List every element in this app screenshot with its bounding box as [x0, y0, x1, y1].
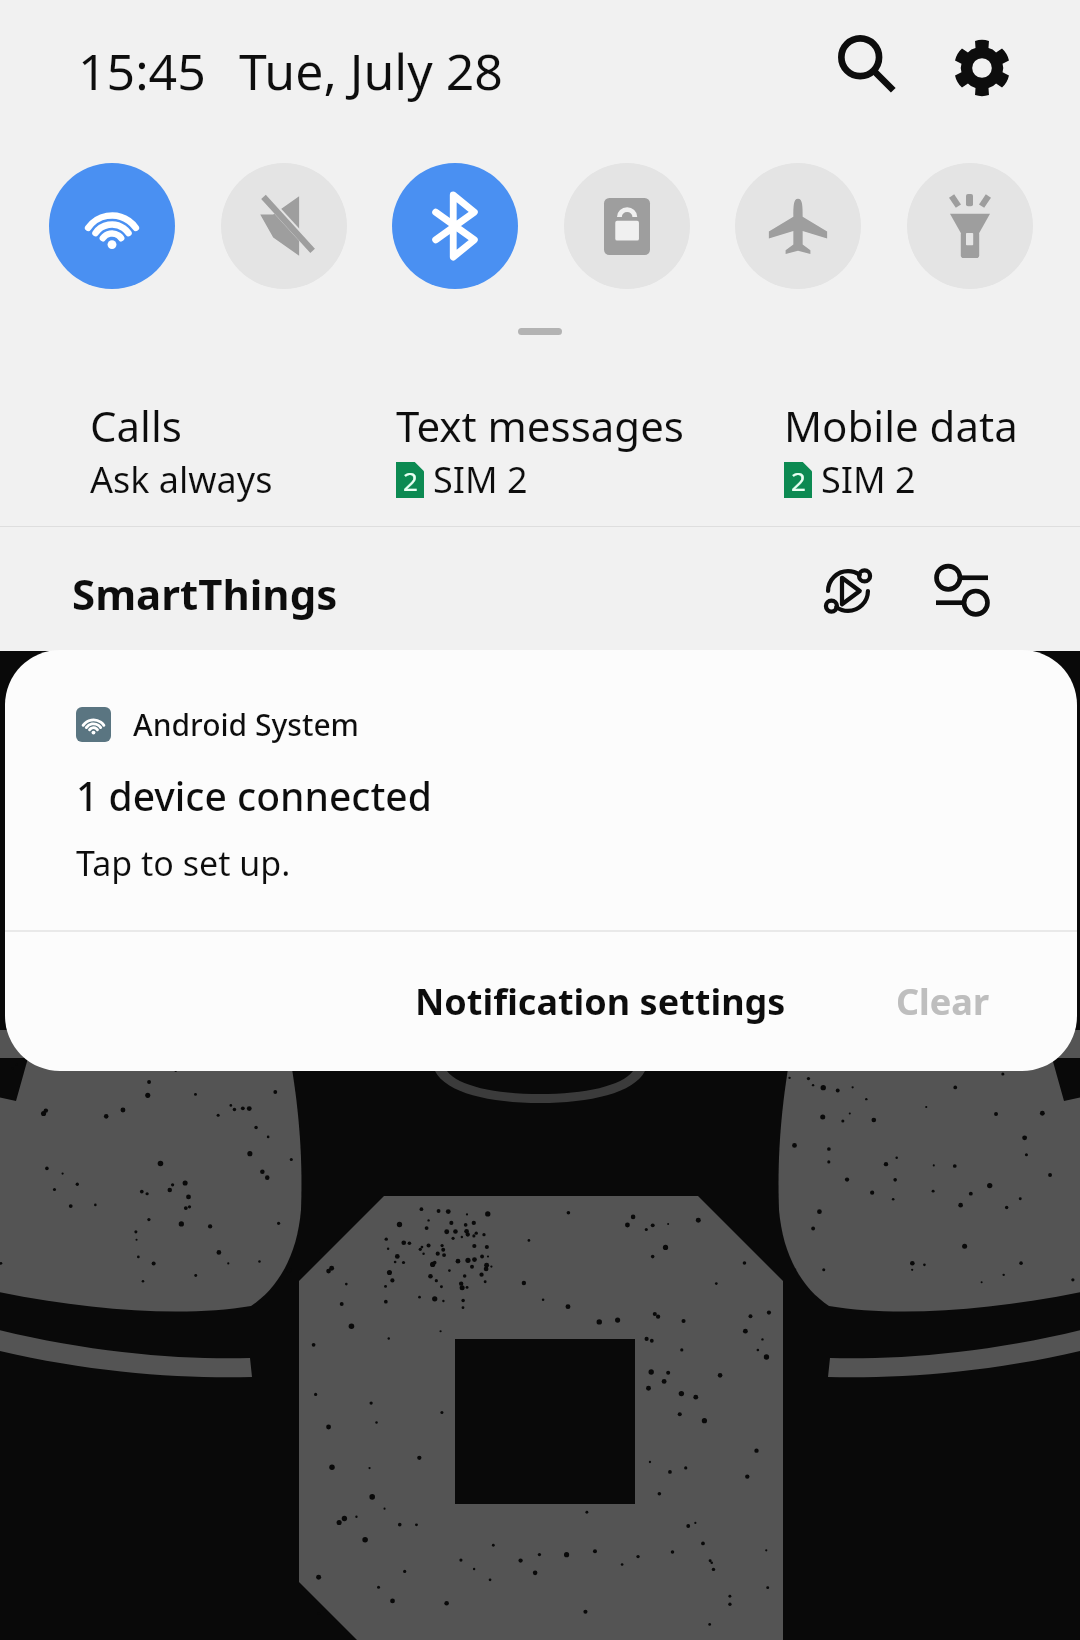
- button[interactable]: Settings: [938, 24, 1026, 112]
- staticText: Tue, July 28: [239, 37, 503, 105]
- button[interactable]: Android System: [5, 650, 1077, 930]
- button[interactable]: Bluetooth: [392, 163, 518, 289]
- button[interactable]: Wi-Fi: [49, 163, 175, 289]
- staticText: Notification settings: [415, 977, 786, 1026]
- staticText: 2: [791, 463, 806, 498]
- staticText: SIM 2: [433, 455, 528, 504]
- button[interactable]: Flashlight: [907, 163, 1033, 289]
- staticText: SIM 2: [821, 455, 916, 504]
- button[interactable]: Mute: [221, 163, 347, 289]
- staticText: SmartThings: [72, 565, 338, 622]
- staticText: Android System: [133, 704, 360, 745]
- button[interactable]: Media output: [805, 548, 891, 634]
- button[interactable]: Lock: [564, 163, 690, 289]
- staticText: Calls: [90, 397, 182, 454]
- staticText: Text messages: [396, 397, 684, 454]
- staticText: Mobile data: [784, 397, 1018, 454]
- button[interactable]: Airplane mode: [735, 163, 861, 289]
- staticText: 15:45: [78, 37, 206, 105]
- staticText: 2: [403, 463, 418, 498]
- staticText: Tap to set up.: [76, 840, 291, 886]
- staticText: Ask always: [90, 455, 273, 504]
- button[interactable]: Search: [822, 19, 910, 107]
- button[interactable]: Clear: [872, 951, 1013, 1052]
- staticText: Clear: [896, 977, 989, 1026]
- staticText: 1 device connected: [76, 769, 432, 822]
- button[interactable]: Notification settings: [391, 951, 810, 1052]
- button[interactable]: Devices: [919, 548, 1005, 634]
